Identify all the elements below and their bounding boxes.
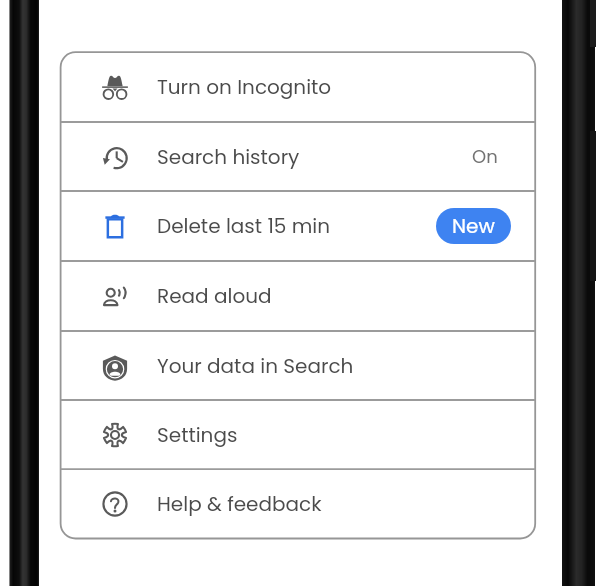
button[interactable]: Settings: [61, 400, 536, 469]
other: Your data in Search: [102, 355, 128, 381]
button[interactable]: Delete: [61, 191, 536, 261]
button[interactable]: Help and feedback: [61, 469, 536, 538]
other: History: [102, 144, 128, 170]
button[interactable]: New: [436, 208, 511, 244]
staticText: Your data in Search: [157, 352, 354, 380]
other: Help and feedback: [102, 491, 128, 517]
staticText: Search history: [157, 143, 300, 171]
staticText: New: [452, 212, 495, 240]
staticText: Turn on Incognito: [157, 73, 332, 101]
button[interactable]: Your data in Search: [61, 331, 536, 400]
staticText: Help & feedback: [157, 490, 322, 518]
other: Settings: [102, 422, 128, 448]
button[interactable]: Read aloud: [61, 261, 536, 331]
other: Incognito: [102, 74, 128, 100]
other: Read aloud: [102, 283, 128, 309]
other: Delete: [102, 213, 128, 239]
button[interactable]: History: [61, 122, 536, 191]
staticText: Read aloud: [157, 282, 272, 310]
staticText: Settings: [157, 421, 238, 449]
staticText: On: [472, 144, 498, 169]
staticText: Delete last 15 min: [157, 212, 330, 240]
button[interactable]: Incognito: [61, 52, 536, 122]
